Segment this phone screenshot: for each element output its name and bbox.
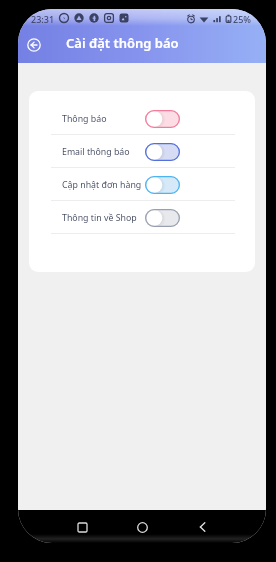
staticText: Cập nhật đơn hàng — [62, 179, 142, 191]
button[interactable]: Email thông báo — [29, 134, 255, 167]
staticText: 25% — [233, 13, 251, 25]
staticText: Email thông báo — [62, 146, 130, 158]
button[interactable]: Cập nhật đơn hàng — [29, 167, 255, 200]
button[interactable]: Recents — [69, 514, 95, 540]
staticText: 23:31 — [31, 13, 55, 25]
button[interactable]: Back — [189, 514, 215, 540]
button[interactable]: Back — [23, 34, 44, 55]
staticText: Thông tin về Shop — [62, 212, 137, 224]
button[interactable]: Thông báo — [29, 101, 255, 134]
staticText: Cài đặt thông báo — [66, 34, 179, 52]
staticText: Thông báo — [62, 113, 107, 125]
button[interactable]: Thông tin về Shop — [29, 200, 255, 233]
button[interactable]: Home — [129, 514, 155, 540]
